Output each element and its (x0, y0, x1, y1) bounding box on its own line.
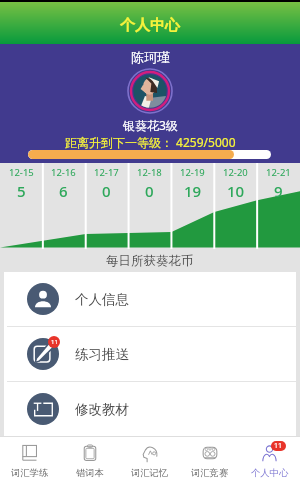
staticText: 12-17 (94, 166, 119, 179)
staticText: 12-15 (9, 166, 34, 179)
staticText: 银葵花3级 (123, 117, 178, 133)
button[interactable]: 11 (240, 436, 300, 478)
staticText: 每日所获葵花币 (106, 253, 194, 269)
button[interactable]: 词汇学练 (0, 436, 60, 478)
button[interactable]: 词汇竞赛 (180, 436, 240, 478)
button[interactable]: 词汇记忆 (120, 436, 180, 478)
staticText: 12-18 (137, 166, 162, 179)
staticText: 修改教材 (75, 401, 129, 418)
staticText: 12-16 (51, 166, 76, 179)
staticText: 练习推送 (75, 346, 129, 363)
staticText: 5 (17, 181, 26, 201)
staticText: 12-20 (223, 166, 248, 179)
staticText: 词汇学练 (11, 467, 49, 478)
staticText: 个人中心 (120, 16, 180, 35)
staticText: 错词本 (76, 467, 104, 478)
staticText: 10 (227, 181, 245, 201)
button[interactable]: 错词本 (60, 436, 120, 478)
staticText: 9 (274, 181, 283, 201)
staticText: 6 (59, 181, 68, 201)
staticText: 12-19 (180, 166, 205, 179)
button[interactable]: 11 (4, 327, 296, 381)
button[interactable]: 个人信息 (4, 272, 296, 326)
button[interactable]: 修改教材 (4, 382, 296, 436)
staticText: 词汇竞赛 (191, 467, 229, 478)
staticText: 陈珂瑾 (131, 49, 170, 65)
staticText: 个人信息 (75, 291, 129, 308)
staticText: 19 (184, 181, 202, 201)
staticText: 11 (51, 338, 58, 346)
staticText: 11 (274, 441, 283, 451)
staticText: 0 (145, 181, 154, 201)
staticText: 个人中心 (251, 467, 289, 478)
staticText: 0 (102, 181, 111, 201)
staticText: 词汇记忆 (131, 467, 169, 478)
staticText: 12-21 (266, 166, 291, 179)
staticText: 距离升到下一等级： 4259/5000 (65, 134, 236, 150)
